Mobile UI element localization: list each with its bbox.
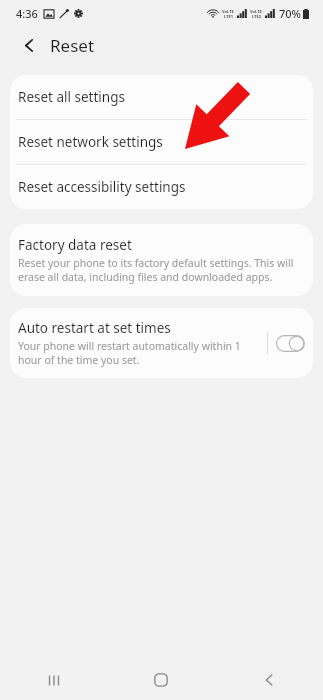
button[interactable]: Home	[107, 660, 215, 700]
button[interactable]: Reset all settings	[10, 75, 313, 119]
staticText: Reset all settings	[18, 88, 125, 106]
staticText: Your phone will restart automatically wi…	[18, 339, 263, 367]
staticText: Reset accessibility settings	[18, 178, 186, 196]
staticText: Reset	[50, 34, 95, 57]
staticText: Reset network settings	[18, 133, 163, 151]
staticText: VoLTE	[250, 9, 262, 14]
button[interactable]: Auto restart toggle	[276, 335, 305, 352]
button[interactable]: Reset network settings	[10, 120, 313, 164]
button[interactable]: Auto restart at set times	[10, 308, 267, 378]
button[interactable]: Back	[14, 30, 44, 60]
staticText: Factory data reset	[18, 236, 132, 254]
button[interactable]: Recents	[0, 660, 107, 700]
staticText: 4:36	[16, 6, 38, 21]
staticText: Reset your phone to its factory default …	[18, 256, 305, 284]
staticText: LTE2	[252, 14, 261, 19]
button[interactable]: Factory data reset	[10, 224, 313, 296]
button[interactable]: Reset accessibility settings	[10, 165, 313, 209]
staticText: Auto restart at set times	[18, 319, 171, 337]
staticText: VoLTE	[222, 9, 234, 14]
button[interactable]: Back	[215, 660, 323, 700]
staticText: 70%	[279, 6, 301, 21]
staticText: LTE1	[224, 14, 233, 19]
